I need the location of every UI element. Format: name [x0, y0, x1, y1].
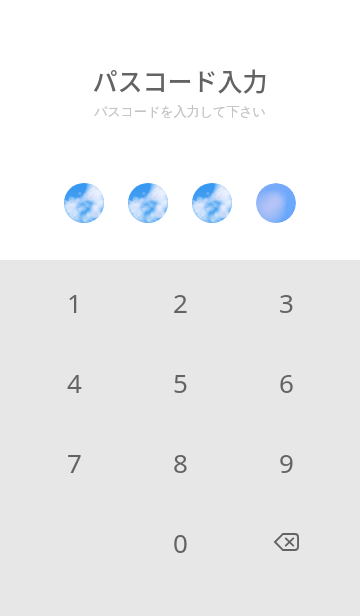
button[interactable]: 6: [233, 342, 339, 422]
button[interactable]: 2: [127, 262, 233, 342]
staticText: 7: [67, 445, 82, 480]
button[interactable]: 0: [127, 502, 233, 582]
staticText: 6: [279, 365, 294, 400]
button[interactable]: 9: [233, 422, 339, 502]
staticText: 9: [279, 445, 294, 480]
staticText: 8: [173, 445, 188, 480]
staticText: 5: [173, 365, 188, 400]
staticText: パスコードを入力して下さい: [94, 103, 266, 119]
staticText: 1: [67, 285, 82, 320]
button[interactable]: 5: [127, 342, 233, 422]
staticText: 3: [279, 285, 294, 320]
staticText: 2: [173, 285, 188, 320]
staticText: 4: [67, 365, 82, 400]
button[interactable]: 3: [233, 262, 339, 342]
button[interactable]: 7: [21, 422, 127, 502]
staticText: 0: [173, 525, 188, 560]
button[interactable]: 4: [21, 342, 127, 422]
button[interactable]: 8: [127, 422, 233, 502]
button[interactable]: 1: [21, 262, 127, 342]
staticText: パスコード入力: [92, 62, 268, 96]
button[interactable]: Delete: [233, 502, 339, 582]
